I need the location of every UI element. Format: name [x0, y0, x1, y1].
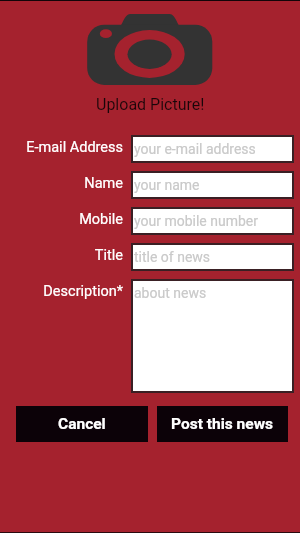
staticText: your mobile number [134, 213, 259, 229]
button[interactable]: title of news [133, 245, 292, 269]
button[interactable]: your e-mail address [133, 137, 292, 161]
button[interactable]: about news [133, 281, 292, 391]
staticText: Post this news [171, 415, 274, 433]
button[interactable]: your name [133, 173, 292, 197]
staticText: about news [134, 285, 207, 301]
staticText: your e-mail address [134, 141, 256, 157]
staticText: Name [84, 175, 123, 192]
button[interactable]: your mobile number [133, 209, 292, 233]
button[interactable]: Upload Picture [0, 0, 300, 90]
staticText: Upload Picture! [96, 95, 205, 114]
staticText: Title [94, 247, 123, 264]
staticText: Mobile [79, 211, 123, 228]
button[interactable]: Cancel [16, 406, 148, 442]
staticText: E-mail Address [26, 139, 123, 156]
staticText: your name [134, 177, 200, 193]
staticText: Description* [43, 283, 123, 300]
staticText: Cancel [58, 415, 106, 433]
button[interactable]: Post this news [157, 406, 288, 442]
staticText: title of news [134, 249, 211, 265]
